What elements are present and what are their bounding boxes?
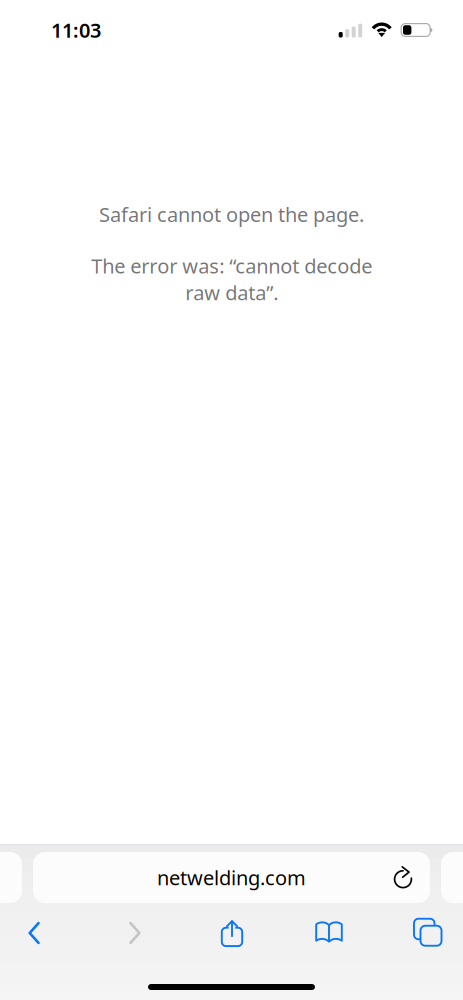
staticText: Safari cannot open the page. xyxy=(99,201,364,228)
button[interactable]: Tabs xyxy=(390,904,458,954)
button[interactable]: Share xyxy=(198,908,266,958)
button[interactable]: Forward xyxy=(101,908,169,958)
button[interactable]: Back xyxy=(0,908,68,958)
staticText: 11:03 xyxy=(51,17,101,43)
staticText: netwelding.com xyxy=(157,864,306,891)
button[interactable]: Bookmarks xyxy=(295,908,363,958)
button[interactable]: netwelding.com xyxy=(33,852,430,903)
staticText: The error was: “cannot decode raw data”. xyxy=(91,253,372,306)
